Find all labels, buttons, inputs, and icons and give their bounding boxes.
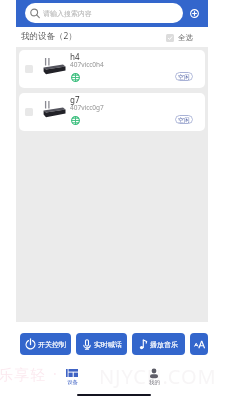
button[interactable]: h4 [19,50,205,88]
button[interactable]: Font size [190,333,208,355]
button[interactable]: 实时喊话 [76,333,127,355]
button[interactable]: 设备 [58,369,86,386]
button[interactable]: g7 [19,93,205,131]
button[interactable]: 全选 [166,33,193,42]
staticText: g7 [70,94,80,105]
staticText: 设备 [67,379,78,386]
button[interactable]: Add device [187,6,201,20]
button[interactable]: 开关控制 [20,333,71,355]
staticText: 播放音乐 [150,340,178,349]
staticText: 实时喊话 [94,340,122,349]
staticText: · [53,364,57,383]
staticText: 请输入搜索内容 [43,9,92,18]
staticText: 我的设备（2） [21,30,77,42]
button[interactable]: 空闲 [175,72,193,81]
staticText: 407vicc0h4 [70,60,104,69]
staticText: 空闲 [178,116,190,124]
button[interactable]: 我的 [140,369,168,386]
staticText: h4 [70,51,80,62]
staticText: 全选 [178,33,193,42]
staticText: 空闲 [178,73,190,81]
staticText: 乐享轻 [0,366,47,385]
staticText: 开关控制 [38,340,66,349]
staticText: NJYCH.COM [99,363,217,390]
button[interactable]: 空闲 [175,115,193,124]
staticText: 我的 [149,379,160,386]
button[interactable]: 播放音乐 [132,333,185,355]
button[interactable]: 请输入搜索内容 [25,3,183,23]
staticText: 407vicc0g7 [70,103,104,112]
